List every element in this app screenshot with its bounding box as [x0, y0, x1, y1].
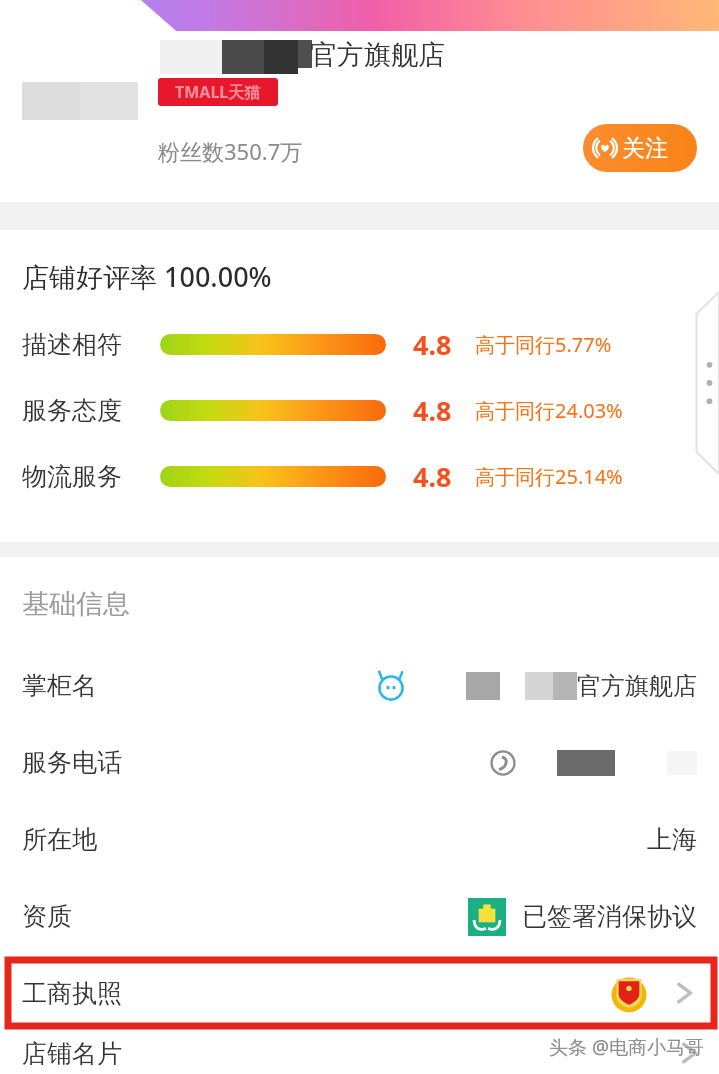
- staticText: TMALL天猫: [175, 81, 261, 103]
- staticText: 基础信息: [22, 587, 130, 621]
- other: 营业执照: [610, 974, 648, 1012]
- staticText: 高于同行5.77%: [475, 331, 612, 358]
- other: 旺旺: [374, 669, 408, 703]
- staticText: 4.8: [413, 458, 452, 495]
- other: 电话: [487, 747, 519, 779]
- staticText: 物流服务: [22, 461, 122, 492]
- staticText: 资质: [22, 901, 72, 932]
- button[interactable]: 工商执照: [8, 960, 714, 1026]
- button[interactable]: 服务态度: [0, 391, 719, 429]
- button[interactable]: 所在地: [0, 801, 719, 878]
- staticText: 头条 @电商小马哥: [549, 1034, 705, 1060]
- button[interactable]: 店铺名片: [0, 1032, 719, 1074]
- other: 查看详情: [679, 1036, 699, 1070]
- button[interactable]: 掌柜名: [0, 647, 719, 724]
- staticText: 服务态度: [22, 395, 122, 426]
- staticText: 官方旗舰店: [577, 671, 697, 701]
- staticText: 掌柜名: [22, 670, 97, 701]
- staticText: 4.8: [413, 326, 452, 363]
- staticText: 已签署消保协议: [522, 901, 697, 932]
- staticText: 4.8: [413, 392, 452, 429]
- staticText: 关注: [622, 134, 668, 163]
- button[interactable]: 资质: [0, 878, 719, 955]
- other: 查看详情: [674, 976, 694, 1010]
- staticText: 店铺好评率 100.00%: [22, 258, 272, 295]
- staticText: 官方旗舰店: [310, 38, 445, 72]
- staticText: 所在地: [22, 824, 97, 855]
- staticText: 工商执照: [22, 978, 122, 1009]
- staticText: 高于同行25.14%: [475, 463, 623, 490]
- staticText: 上海: [647, 824, 697, 855]
- button[interactable]: 服务电话: [0, 724, 719, 801]
- button[interactable]: 描述相符: [0, 325, 719, 363]
- other: 消保协议: [468, 898, 506, 936]
- button[interactable]: 物流服务: [0, 457, 719, 495]
- button[interactable]: 更多: [685, 292, 719, 474]
- staticText: 描述相符: [22, 329, 122, 360]
- staticText: 粉丝数350.7万: [158, 136, 303, 166]
- staticText: 服务电话: [22, 747, 122, 778]
- staticText: 店铺名片: [22, 1038, 122, 1069]
- staticText: 高于同行24.03%: [475, 397, 623, 424]
- button[interactable]: 关注: [583, 124, 697, 172]
